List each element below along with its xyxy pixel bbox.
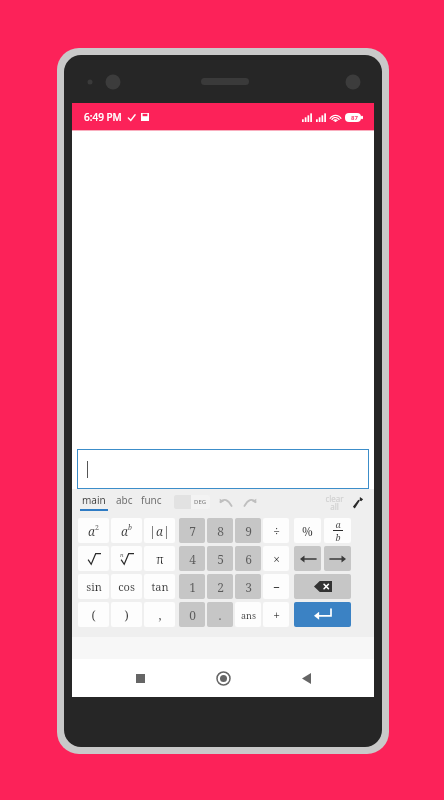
button[interactable]: n (111, 546, 142, 571)
staticText: 1 (189, 579, 196, 595)
button[interactable]: 1 (179, 574, 205, 599)
staticText: 9 (245, 523, 252, 539)
button[interactable]: 9 (235, 518, 261, 543)
button[interactable]: , (144, 602, 175, 627)
staticText: abc (116, 493, 133, 507)
button[interactable]: cos (111, 574, 142, 599)
button[interactable]: Enter (294, 602, 351, 627)
staticText: cos (118, 579, 135, 594)
button[interactable]: − (263, 574, 289, 599)
staticText: 87 (351, 114, 358, 122)
staticText: 2 (95, 523, 99, 533)
button[interactable]: func (141, 493, 162, 511)
button[interactable]: 0 (179, 602, 205, 627)
staticText: tan (151, 579, 169, 594)
staticText: 3 (245, 579, 252, 595)
button[interactable]: 4 (179, 546, 205, 571)
button[interactable]: ÷ (263, 518, 289, 543)
button[interactable]: tan (144, 574, 175, 599)
button[interactable]: 3 (235, 574, 261, 599)
staticText: b (335, 531, 341, 543)
button[interactable]: |a| (144, 518, 175, 543)
staticText: ) (124, 607, 129, 623)
staticText: func (141, 493, 162, 507)
staticText: 7 (189, 523, 196, 539)
button[interactable] (78, 546, 109, 571)
staticText: 2 (217, 579, 224, 595)
button[interactable]: Left (294, 546, 321, 571)
button[interactable]: 8 (207, 518, 233, 543)
button[interactable]: ans (235, 602, 261, 627)
staticText: clear all (325, 493, 344, 512)
button[interactable]: + (263, 602, 289, 627)
staticText: main (82, 493, 106, 507)
button[interactable]: Settings (350, 494, 366, 510)
staticText: % (302, 523, 313, 539)
button[interactable]: 5 (207, 546, 233, 571)
staticText: a (121, 523, 128, 539)
button[interactable]: π (144, 546, 175, 571)
staticText: , (158, 607, 162, 623)
button[interactable]: 2 (207, 574, 233, 599)
staticText: + (273, 607, 280, 623)
staticText: ÷ (273, 523, 280, 539)
button[interactable] (78, 450, 368, 488)
staticText: sin (86, 579, 102, 594)
staticText: . (218, 607, 222, 623)
staticText: ( (91, 607, 96, 623)
button[interactable]: Home (210, 665, 236, 691)
button[interactable]: 7 (179, 518, 205, 543)
button[interactable]: sin (78, 574, 109, 599)
button[interactable]: × (263, 546, 289, 571)
button[interactable]: Back (293, 665, 319, 691)
button[interactable]: abc (116, 493, 133, 511)
button[interactable]: ( (78, 602, 109, 627)
button[interactable]: % (294, 518, 321, 543)
staticText: 8 (217, 523, 224, 539)
button[interactable]: a (78, 518, 109, 543)
button[interactable]: . (207, 602, 233, 627)
button[interactable]: main (80, 493, 108, 511)
staticText: 4 (189, 551, 196, 567)
button[interactable]: a (324, 518, 351, 543)
staticText: 5 (217, 551, 224, 567)
staticText: 6:49 PM (84, 110, 122, 124)
staticText: DEG (194, 498, 207, 506)
staticText: 6 (245, 551, 252, 567)
staticText: × (273, 551, 280, 567)
staticText: ans (241, 609, 256, 621)
button[interactable]: Redo (242, 494, 258, 510)
staticText: n (120, 551, 124, 559)
button[interactable]: Undo (218, 494, 234, 510)
button[interactable]: Right (324, 546, 351, 571)
button[interactable]: 6 (235, 546, 261, 571)
staticText: a (335, 518, 341, 530)
staticText: |a| (149, 523, 170, 539)
staticText: π (156, 551, 164, 567)
button[interactable]: a (111, 518, 142, 543)
button[interactable]: clear all (325, 493, 344, 512)
staticText: 0 (189, 607, 196, 623)
staticText: a (88, 523, 95, 539)
button[interactable]: ) (111, 602, 142, 627)
button[interactable]: Degrees toggle (174, 495, 210, 509)
staticText: b (128, 523, 132, 533)
staticText: − (273, 579, 280, 595)
button[interactable]: Recents (127, 665, 153, 691)
button[interactable]: Backspace (294, 574, 351, 599)
